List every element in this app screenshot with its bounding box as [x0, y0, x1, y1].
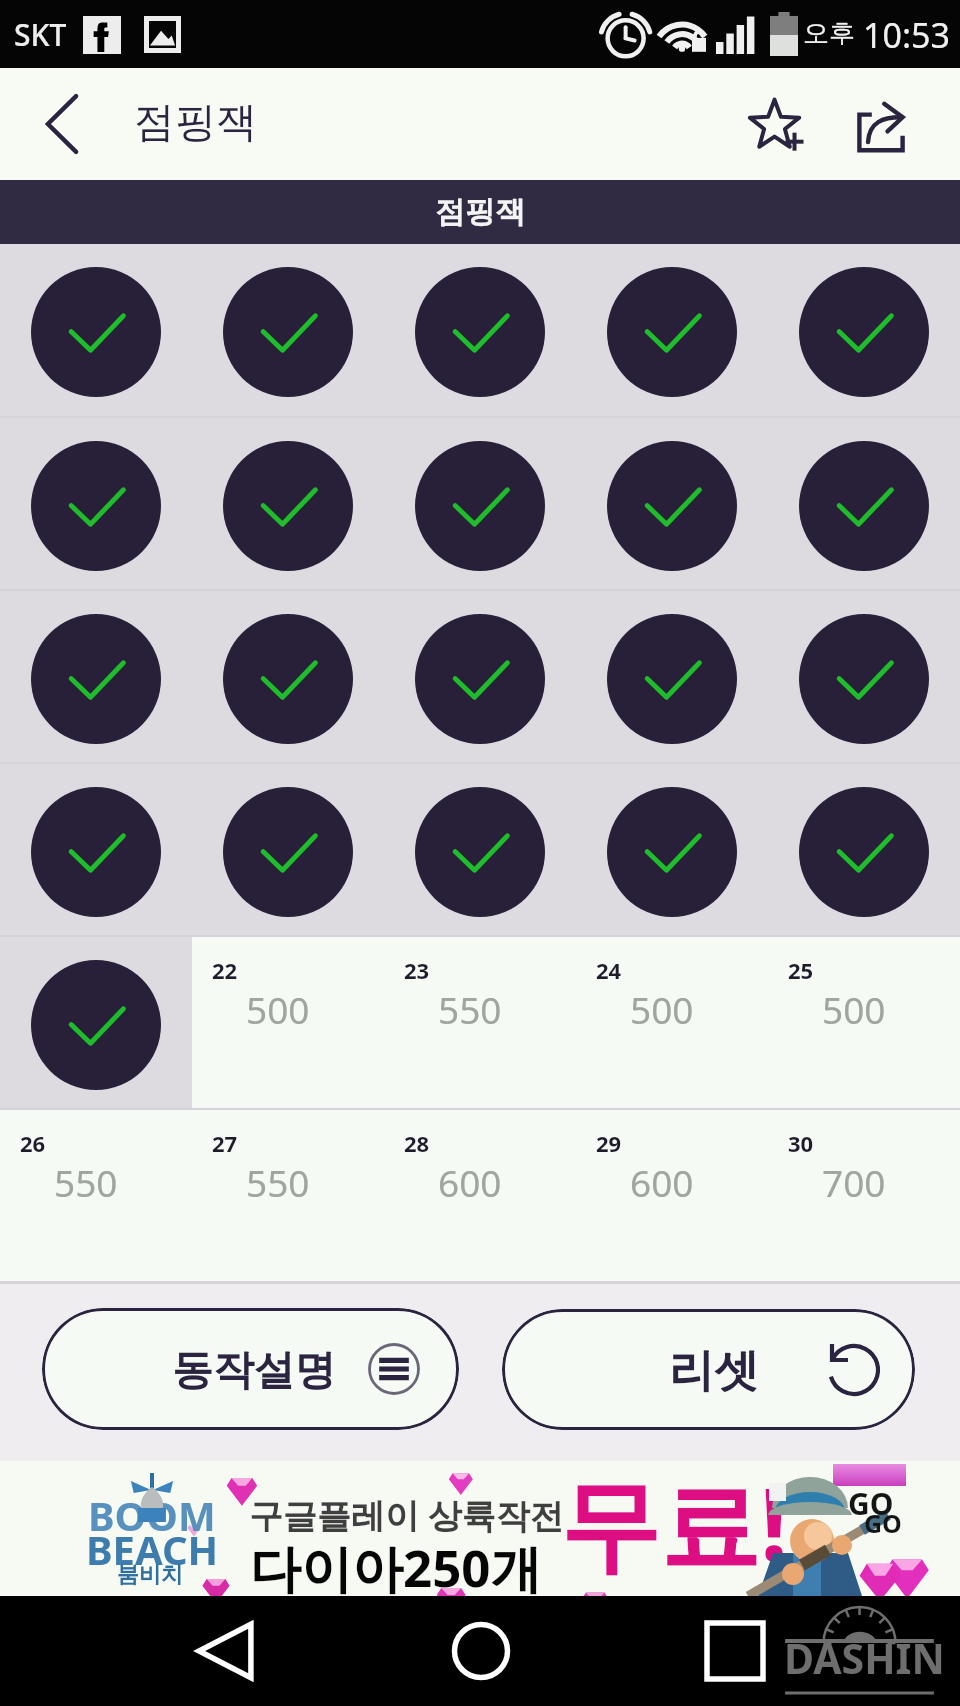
button[interactable]	[192, 764, 384, 935]
button[interactable]	[576, 244, 768, 416]
staticText: 26	[20, 1128, 46, 1158]
button[interactable]	[768, 418, 960, 589]
staticText: BEACH	[86, 1522, 219, 1576]
staticText: 무료!	[560, 1454, 789, 1589]
button[interactable]	[192, 591, 384, 762]
button[interactable]	[384, 244, 576, 416]
staticText: BOOM	[88, 1488, 216, 1542]
staticText: 550	[438, 984, 502, 1034]
button[interactable]: Advertisement	[0, 1461, 960, 1596]
staticText: 23	[404, 955, 430, 985]
staticText: GO	[848, 1483, 894, 1524]
button[interactable]: 28	[384, 1110, 576, 1281]
button[interactable]	[768, 244, 960, 416]
button[interactable]	[768, 591, 960, 762]
button[interactable]: Add to favorites	[716, 68, 832, 180]
staticText: 구글플레이 상륙작전	[249, 1492, 564, 1538]
button[interactable]	[0, 591, 192, 762]
staticText: 붐비치	[117, 1561, 183, 1589]
button[interactable]	[576, 764, 768, 935]
button[interactable]: 동작설명	[42, 1308, 459, 1430]
button[interactable]: 22	[192, 937, 384, 1108]
button[interactable]	[576, 591, 768, 762]
staticText: DASHIN	[784, 1630, 945, 1686]
button[interactable]	[192, 244, 384, 416]
button[interactable]: 24	[576, 937, 768, 1108]
staticText: 700	[822, 1157, 886, 1207]
button[interactable]	[0, 764, 192, 935]
button[interactable]	[384, 591, 576, 762]
button[interactable]	[192, 418, 384, 589]
staticText: 동작설명	[172, 1345, 336, 1397]
staticText: 다이아250개	[250, 1532, 542, 1602]
staticText: 10:53	[863, 12, 950, 58]
button[interactable]: 25	[768, 937, 960, 1108]
staticText: 29	[596, 1128, 622, 1158]
button[interactable]: Back	[0, 68, 112, 180]
staticText: 점핑잭	[435, 193, 525, 231]
button[interactable]	[384, 418, 576, 589]
button[interactable]: Back	[165, 1596, 285, 1706]
button[interactable]	[576, 418, 768, 589]
button[interactable]: 27	[192, 1110, 384, 1281]
staticText: 25	[788, 955, 814, 985]
button[interactable]	[0, 937, 192, 1108]
staticText: 500	[246, 984, 310, 1034]
button[interactable]: 30	[768, 1110, 960, 1281]
button[interactable]: 29	[576, 1110, 768, 1281]
staticText: 리셋	[669, 1343, 759, 1400]
staticText: 22	[212, 955, 238, 985]
button[interactable]: 리셋	[502, 1309, 915, 1430]
staticText: 24	[596, 955, 622, 985]
button[interactable]: Share	[832, 68, 928, 180]
button[interactable]: Recent apps	[675, 1596, 795, 1706]
button[interactable]	[384, 764, 576, 935]
staticText: 오후	[803, 17, 855, 50]
button[interactable]: 26	[0, 1110, 192, 1281]
staticText: 30	[788, 1128, 814, 1158]
staticText: GO	[864, 1506, 902, 1540]
staticText: 28	[404, 1128, 430, 1158]
staticText: 600	[630, 1157, 694, 1207]
staticText: 550	[54, 1157, 118, 1207]
staticText: 27	[212, 1128, 238, 1158]
button[interactable]: Home	[421, 1596, 541, 1706]
button[interactable]	[768, 764, 960, 935]
button[interactable]: 23	[384, 937, 576, 1108]
staticText: 550	[246, 1157, 310, 1207]
staticText: SKT	[14, 14, 67, 55]
staticText: 점핑잭	[134, 97, 257, 149]
staticText: 500	[822, 984, 886, 1034]
button[interactable]	[0, 244, 192, 416]
staticText: 600	[438, 1157, 502, 1207]
button[interactable]	[0, 418, 192, 589]
staticText: 500	[630, 984, 694, 1034]
